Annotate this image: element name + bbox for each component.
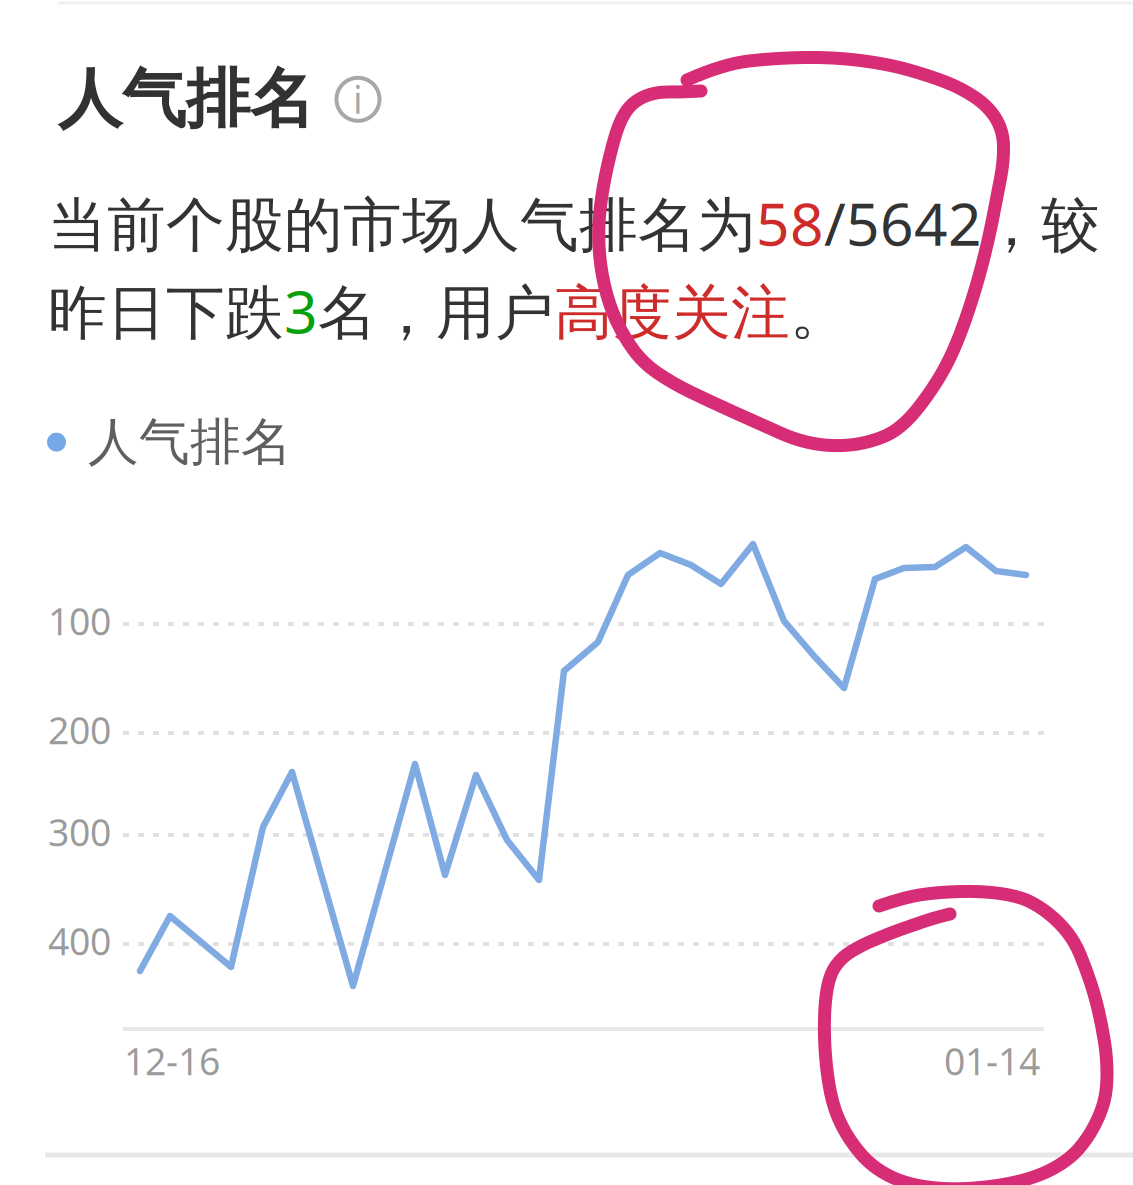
staticText: 100 xyxy=(48,596,111,646)
staticText: 人气排名 xyxy=(58,60,314,139)
staticText: 昨日下跌3名，用户高度关注。 xyxy=(48,272,849,350)
staticText: 12-16 xyxy=(124,1036,220,1086)
staticText: 200 xyxy=(48,705,111,755)
staticText: 400 xyxy=(48,916,111,966)
staticText: 01-14 xyxy=(944,1036,1040,1086)
staticText: 300 xyxy=(48,807,111,857)
staticText: 当前个股的市场人气排名为58/5642，较 xyxy=(48,184,1100,262)
button[interactable]: 人气排名说明 xyxy=(329,70,387,128)
staticText: i xyxy=(353,74,363,124)
staticText: 人气排名 xyxy=(88,411,292,473)
